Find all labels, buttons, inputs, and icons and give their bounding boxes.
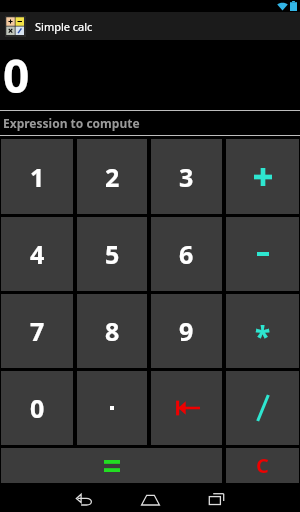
staticText: * (255, 317, 271, 355)
staticText: C (256, 452, 269, 479)
staticText: 6 (179, 237, 194, 271)
staticText: 9 (179, 314, 194, 348)
button[interactable]: 3 (151, 139, 222, 214)
staticText: 5 (105, 237, 120, 271)
staticText: 0 (30, 391, 45, 425)
button[interactable]: 7 (1, 294, 73, 368)
button[interactable]: 1 (1, 139, 73, 214)
staticText: Simple calc (35, 19, 93, 34)
button[interactable]: Divide (226, 371, 299, 445)
staticText: 8 (105, 314, 120, 348)
button[interactable]: 4 (1, 217, 73, 291)
staticText: 1 (30, 160, 45, 194)
button[interactable]: 0 (1, 371, 73, 445)
staticText: 4 (30, 237, 45, 271)
button[interactable]: C (226, 448, 299, 483)
staticText: 7 (30, 314, 45, 348)
button[interactable]: Back (62, 486, 106, 512)
staticText: 3 (179, 160, 194, 194)
button[interactable]: Plus (226, 139, 299, 214)
button[interactable]: Backspace (151, 371, 222, 445)
button[interactable]: Minus (226, 217, 299, 291)
button[interactable]: 2 (77, 139, 147, 214)
staticText: 2 (105, 160, 120, 194)
staticText: Expression to compute (3, 115, 140, 131)
button[interactable]: Home (128, 486, 172, 512)
button[interactable]: Decimal point (77, 371, 147, 445)
button[interactable]: 5 (77, 217, 147, 291)
button[interactable]: 8 (77, 294, 147, 368)
button[interactable]: Recent apps (194, 486, 238, 512)
staticText: 0 (3, 44, 30, 107)
button[interactable]: Multiply (226, 294, 299, 368)
button[interactable]: 6 (151, 217, 222, 291)
button[interactable]: Equals (1, 448, 222, 483)
button[interactable]: 9 (151, 294, 222, 368)
